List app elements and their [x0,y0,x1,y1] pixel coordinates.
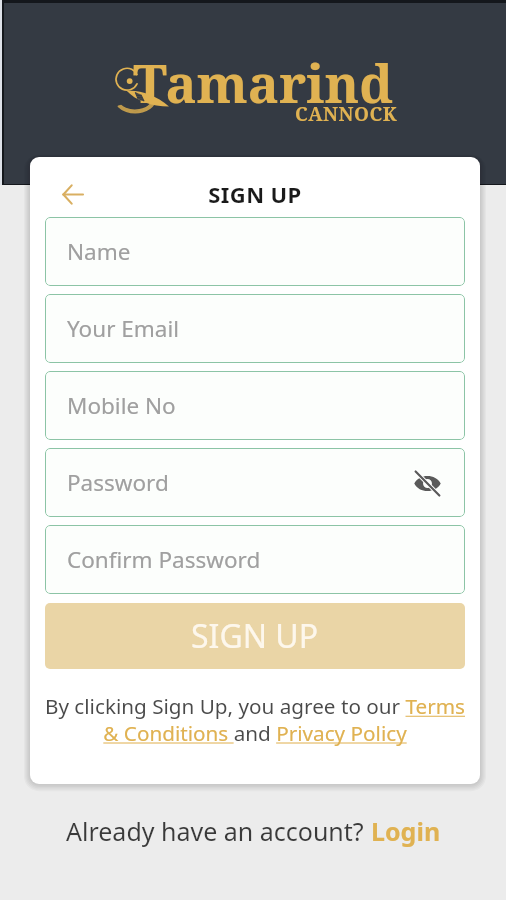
staticText: Confirm Password [67,544,261,575]
staticText: Mobile No [67,390,176,421]
button[interactable]: Name [45,217,465,286]
button[interactable]: Mobile No [45,371,465,440]
button[interactable]: Toggle password visibility [409,465,445,501]
staticText: SIGN UP [191,614,319,658]
staticText: Password [67,467,169,498]
staticText: Already have an account? [66,814,371,848]
staticText: Name [67,236,131,267]
button[interactable]: Your Email [45,294,465,363]
staticText: Login [371,814,441,848]
button[interactable]: Back [51,173,94,216]
staticText: SIGN UP [30,179,480,209]
button[interactable]: SIGN UP [45,603,465,669]
button[interactable]: Confirm Password [45,525,465,594]
staticText: Tamarind [133,47,394,118]
staticText: By clicking Sign Up, you agree to our Te… [36,692,474,747]
button[interactable]: Already have an account? [0,814,506,848]
button[interactable]: Password [45,448,465,517]
staticText: CANNOCK [295,101,398,127]
staticText: Your Email [67,313,180,344]
